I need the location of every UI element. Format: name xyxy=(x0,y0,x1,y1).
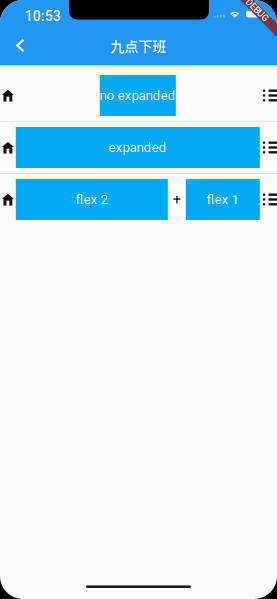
staticText: flex 2 xyxy=(76,192,108,207)
staticText: + xyxy=(173,191,181,208)
staticText: no expanded xyxy=(100,88,176,103)
button[interactable]: Back xyxy=(0,26,40,65)
staticText: flex 1 xyxy=(207,192,239,207)
staticText: 10:53 xyxy=(25,8,61,24)
staticText: DEBUG xyxy=(243,5,271,15)
staticText: expanded xyxy=(109,140,167,155)
staticText: 九点下班 xyxy=(110,35,166,56)
